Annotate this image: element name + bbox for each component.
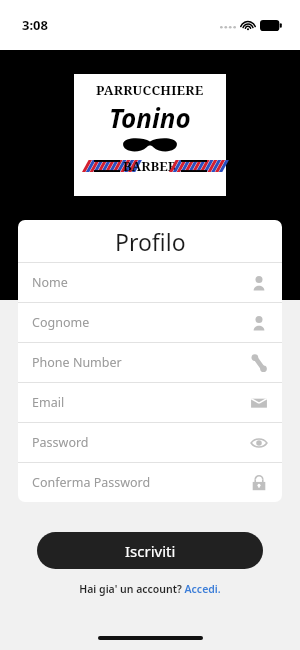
button[interactable]: Phone Number: [18, 343, 282, 382]
other: Confirm password: [250, 474, 268, 492]
other: Show password: [250, 434, 268, 452]
staticText: Nome: [32, 274, 250, 291]
other: Phone: [250, 354, 268, 372]
button[interactable]: Iscriviti: [37, 532, 263, 569]
staticText: Password: [32, 434, 250, 451]
button[interactable]: Password: [18, 423, 282, 462]
button[interactable]: Cognome: [18, 303, 282, 342]
button[interactable]: Hai gia' un account? Accedi.: [73, 580, 227, 598]
staticText: PARRUCCHIERE: [96, 81, 204, 99]
button[interactable]: Nome: [18, 263, 282, 302]
other: Person: [250, 314, 268, 332]
staticText: BARBER: [123, 157, 178, 175]
staticText: Iscriviti: [125, 541, 176, 561]
staticText: Conferma Password: [32, 474, 250, 491]
staticText: Profilo: [115, 226, 186, 257]
other: Person: [250, 274, 268, 292]
staticText: Hai gia' un account? Accedi.: [79, 582, 221, 596]
button[interactable]: Email: [18, 383, 282, 422]
other: Email: [250, 394, 268, 412]
staticText: Email: [32, 394, 250, 411]
staticText: Cognome: [32, 314, 250, 331]
staticText: Tonino: [109, 100, 191, 135]
staticText: Phone Number: [32, 354, 250, 371]
staticText: 3:08: [22, 16, 48, 34]
button[interactable]: Conferma Password: [18, 463, 282, 502]
